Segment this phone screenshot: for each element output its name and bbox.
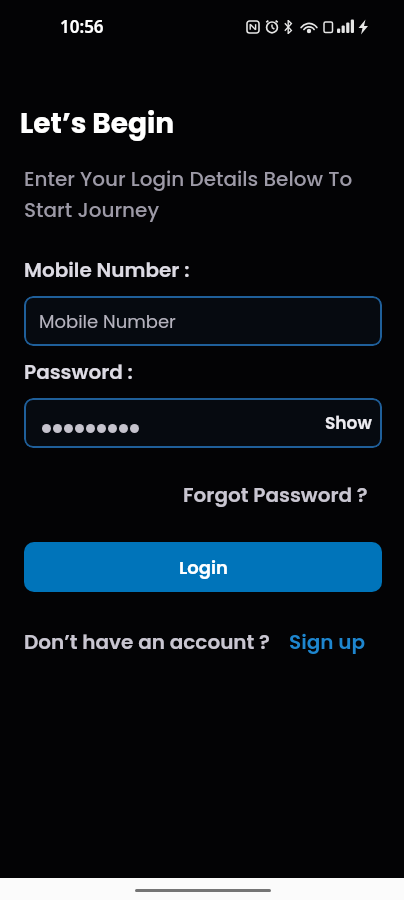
button[interactable]: Mobile Number <box>24 296 382 346</box>
button[interactable]: Login <box>24 542 382 592</box>
staticText: 10:56 <box>60 15 104 38</box>
button[interactable]: Sign up <box>289 628 366 656</box>
staticText: Enter Your Login Details Below To Start … <box>24 165 353 224</box>
staticText: Mobile Number : <box>24 256 190 284</box>
staticText: Don’t have an account ? <box>24 628 270 656</box>
button[interactable]: Show <box>24 398 382 448</box>
button[interactable]: Show <box>325 411 372 435</box>
staticText: Let’s Begin <box>20 104 175 143</box>
button[interactable]: Forgot Password ? <box>183 481 368 509</box>
staticText: Password : <box>24 358 133 386</box>
staticText: Login <box>179 555 228 580</box>
staticText: Mobile Number <box>39 309 176 334</box>
